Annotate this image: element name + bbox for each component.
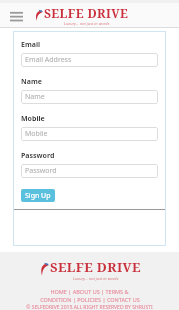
staticText: Sign Up (25, 191, 51, 201)
staticText: Luxury... not just in words (73, 276, 119, 281)
button[interactable]: Mobile (21, 127, 158, 141)
staticText: © SELFEDRIVE 2015.ALL RIGHT RESERVED BY … (26, 304, 153, 310)
button[interactable]: CONDITION | POLICIES | CONTACT US (40, 296, 140, 303)
staticText: Luxury... not just in words (64, 21, 110, 26)
staticText: SELFE DRIVE (50, 258, 141, 276)
staticText: Password (25, 166, 57, 176)
staticText: Name (21, 77, 42, 87)
staticText: Password (21, 151, 55, 161)
button[interactable]: HOME | ABOUT US | TERMS & (50, 288, 129, 295)
button[interactable]: Password (21, 164, 158, 178)
staticText: Mobile (25, 129, 48, 139)
staticText: SELFE DRIVE (44, 5, 129, 21)
staticText: Mobile (21, 114, 45, 124)
button[interactable]: Email Address (21, 53, 158, 67)
staticText: Email (21, 40, 41, 50)
button[interactable]: Sign Up (21, 189, 55, 202)
button[interactable]: Menu (6, 6, 26, 26)
button[interactable]: Name (21, 90, 158, 104)
staticText: Email Address (25, 55, 72, 65)
staticText: Name (25, 92, 45, 102)
